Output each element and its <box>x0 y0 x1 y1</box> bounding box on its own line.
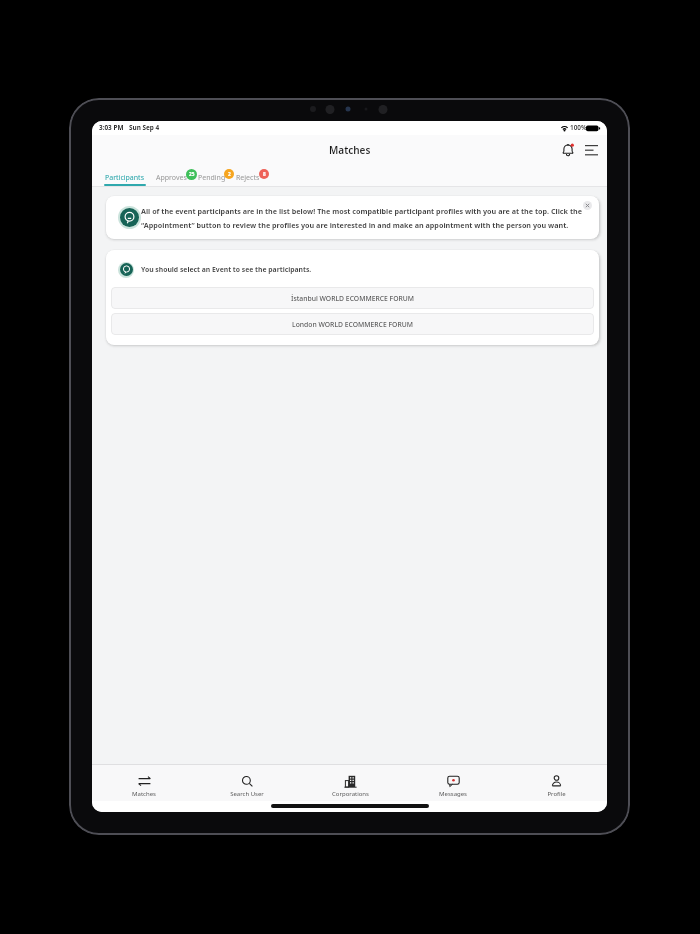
staticText: London WORLD ECOMMERCE FORUM <box>292 320 413 329</box>
staticText: Sun Sep 4 <box>129 123 160 132</box>
button[interactable]: Messages <box>418 775 488 801</box>
staticText: Approves <box>156 173 187 183</box>
button[interactable] <box>558 139 578 159</box>
button[interactable] <box>152 167 197 186</box>
staticText: Participants <box>105 173 144 183</box>
staticText: 25 <box>189 171 195 178</box>
button[interactable] <box>580 139 598 157</box>
staticText: Pending <box>198 173 226 183</box>
staticText: You should select an Event to see the pa… <box>141 265 312 274</box>
staticText: 2 <box>228 171 231 178</box>
button[interactable]: Corporations <box>315 775 385 801</box>
button[interactable] <box>583 201 592 210</box>
staticText: Messages <box>439 790 467 798</box>
staticText: İstanbul WORLD ECOMMERCE FORUM <box>291 294 415 303</box>
staticText: Search User <box>230 790 264 798</box>
staticText: Matches <box>132 790 156 798</box>
staticText: Profile <box>547 790 566 798</box>
button[interactable]: Profile <box>521 775 591 801</box>
staticText: 3:03 PM <box>99 123 124 132</box>
staticText: Rejects <box>236 173 260 183</box>
staticText: 100% <box>570 123 587 132</box>
button[interactable] <box>196 167 236 186</box>
button[interactable]: Matches <box>109 775 179 801</box>
staticText: Matches <box>329 143 371 157</box>
button[interactable]: İstanbul WORLD ECOMMERCE FORUM <box>111 287 594 309</box>
staticText: 8 <box>263 171 266 178</box>
button[interactable]: Search User <box>212 775 282 801</box>
button[interactable] <box>234 167 272 186</box>
staticText: All of the event participants are in the… <box>141 206 582 216</box>
staticText: Corporations <box>332 790 369 798</box>
button[interactable]: London WORLD ECOMMERCE FORUM <box>111 313 594 335</box>
button[interactable] <box>100 167 152 186</box>
staticText: “Appointment” button to review the profi… <box>141 220 569 230</box>
